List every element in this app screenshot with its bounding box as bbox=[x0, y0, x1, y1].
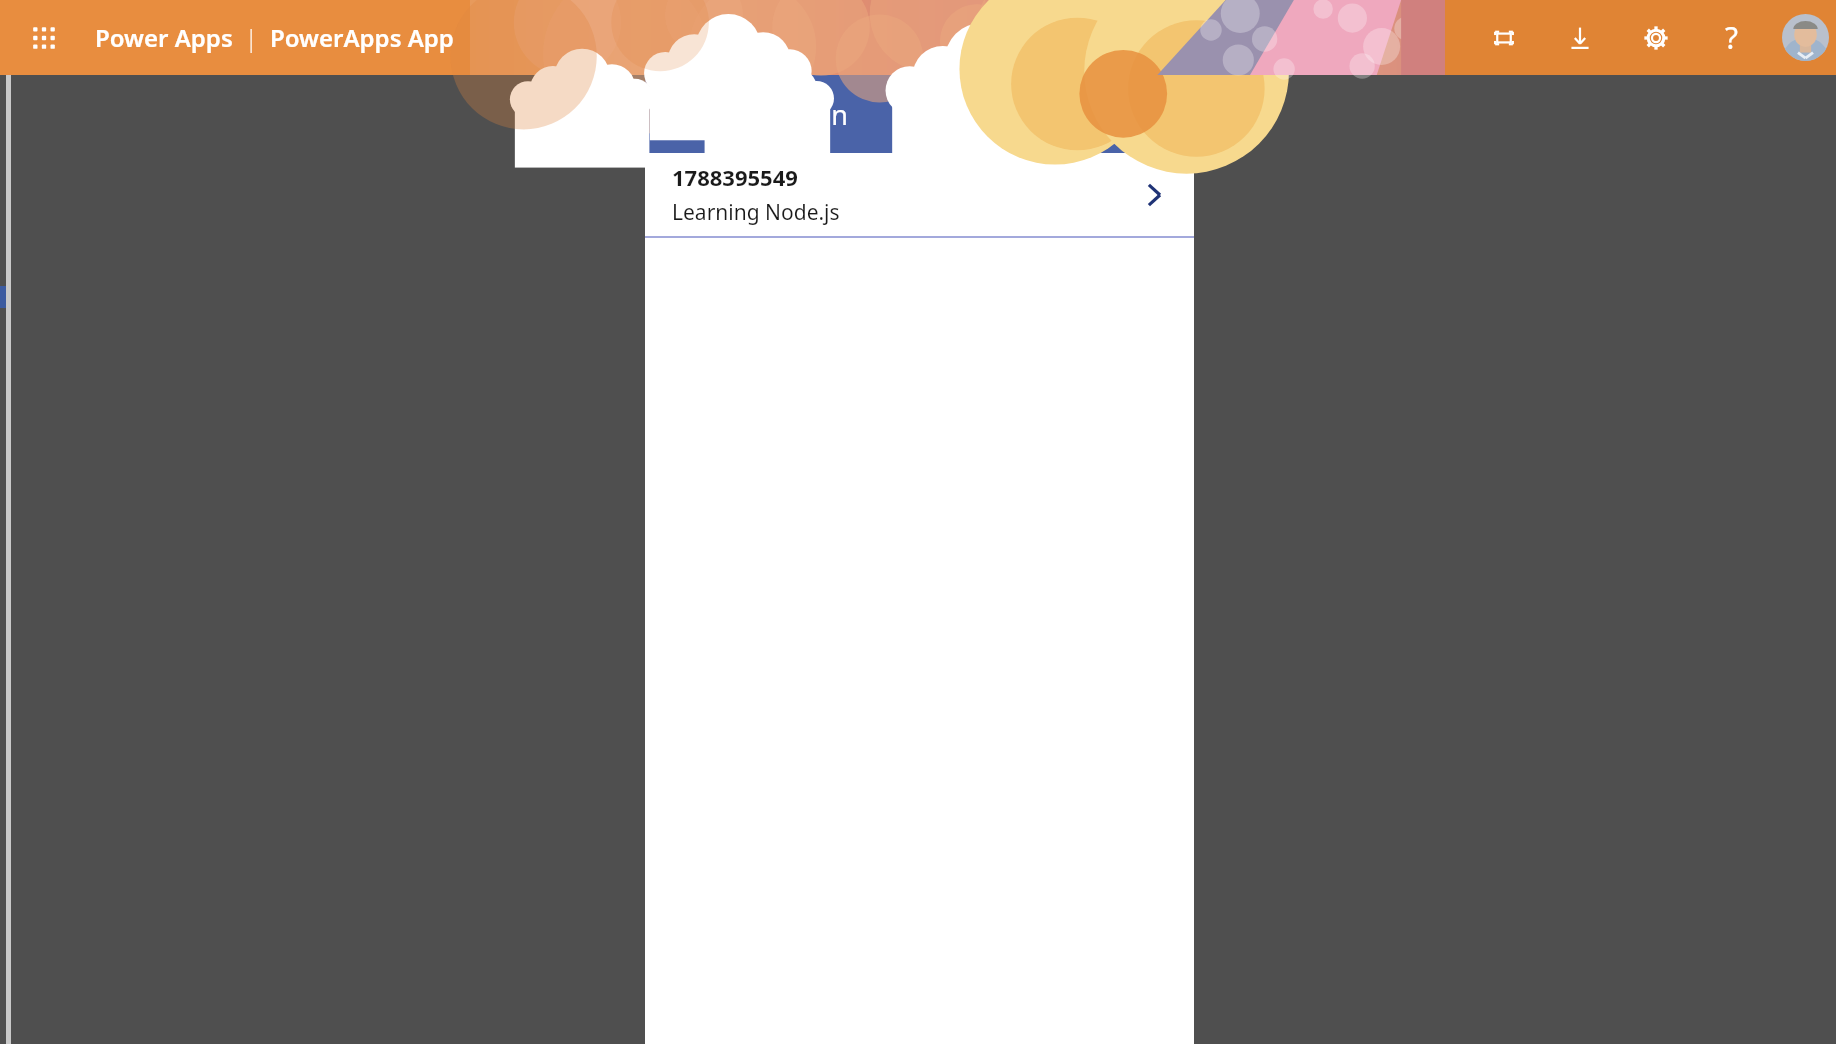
button[interactable]: Full screen bbox=[1475, 0, 1533, 75]
button[interactable]: Download bbox=[1551, 0, 1609, 75]
button[interactable]: Refresh bbox=[990, 85, 1048, 143]
button[interactable]: Help bbox=[1703, 0, 1761, 75]
staticText: BrowseScreen bbox=[669, 96, 848, 133]
staticText: Learning Node.js bbox=[672, 198, 840, 227]
button[interactable]: Power Apps bbox=[95, 0, 454, 75]
button[interactable]: Settings bbox=[1627, 0, 1685, 75]
button[interactable]: Account bbox=[1775, 0, 1836, 75]
staticText: ? bbox=[1725, 17, 1739, 58]
button[interactable]: Add bbox=[1126, 85, 1184, 143]
staticText: PowerApps App bbox=[270, 21, 454, 54]
button[interactable]: Sort bbox=[1058, 85, 1116, 143]
staticText: Power Apps bbox=[95, 21, 233, 54]
staticText: | bbox=[233, 22, 270, 53]
staticText: 1788395549 bbox=[672, 162, 798, 192]
button[interactable]: 1788395549 bbox=[645, 153, 1194, 236]
button[interactable]: App launcher bbox=[22, 16, 66, 60]
button[interactable]: Help bbox=[1703, 0, 1761, 75]
